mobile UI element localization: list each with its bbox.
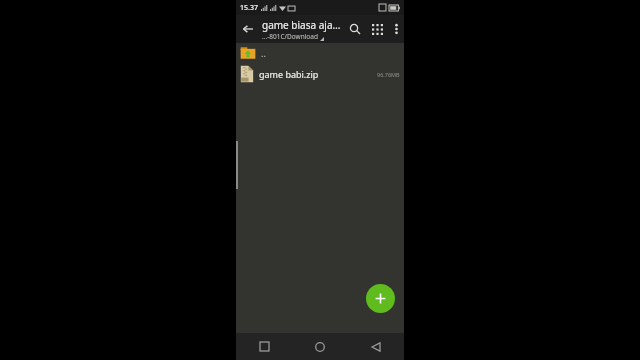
staticText: .. <box>261 47 266 59</box>
button[interactable]: Back <box>236 15 260 43</box>
button[interactable]: Back <box>348 333 404 360</box>
staticText: game biasa aja… <box>262 18 341 32</box>
button[interactable]: Add <box>366 284 395 313</box>
button[interactable]: Recents <box>236 333 292 360</box>
button[interactable]: Home <box>292 333 348 360</box>
button[interactable]: .. <box>236 43 404 63</box>
staticText: game babi.zip <box>259 68 377 80</box>
button[interactable]: More options <box>388 15 404 43</box>
staticText: ...-801C/Download <box>262 32 318 41</box>
button[interactable]: Search <box>344 15 366 43</box>
button[interactable]: Grid view <box>366 15 388 43</box>
button[interactable]: game babi.zip <box>236 63 404 85</box>
staticText: 15.37 <box>240 3 258 13</box>
staticText: 96.76MB <box>377 71 400 78</box>
